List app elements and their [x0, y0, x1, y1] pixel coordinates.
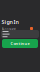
button[interactable]: Continue — [2, 39, 38, 48]
staticText: Continue — [10, 41, 29, 46]
staticText: Account — [1, 26, 15, 31]
button[interactable]: Notifications — [30, 27, 33, 30]
staticText: Sign In — [1, 18, 18, 26]
